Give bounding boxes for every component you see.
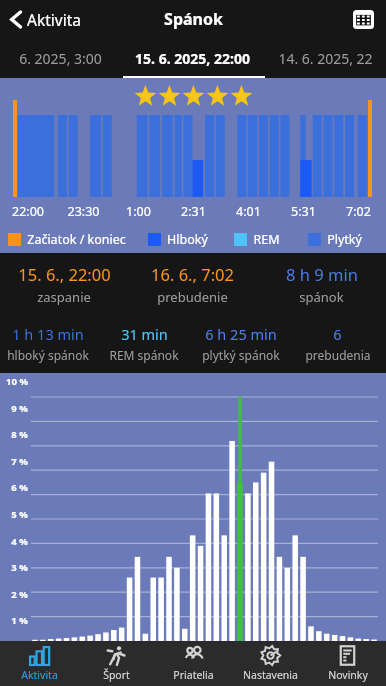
- staticText: 8 h 9 min: [286, 263, 358, 285]
- button[interactable]: Aktivita: [0, 4, 93, 35]
- staticText: 8 %: [11, 428, 28, 441]
- staticText: 23:30: [56, 203, 111, 220]
- staticText: prebudenie: [157, 288, 228, 306]
- staticText: 6: [333, 324, 342, 344]
- staticText: 2 %: [11, 588, 28, 601]
- button[interactable]: Nastavenia: [232, 641, 309, 686]
- staticText: 16. 6., 7:02: [151, 263, 234, 285]
- staticText: 10 %: [6, 375, 28, 388]
- staticText: 6 %: [11, 481, 28, 494]
- button[interactable]: 14. 6. 2025, 22: [265, 38, 386, 78]
- staticText: Začiatok / koniec: [27, 231, 126, 248]
- staticText: 1:00: [111, 203, 166, 220]
- button[interactable]: 31 min: [96, 322, 192, 365]
- button[interactable]: Hlboký: [140, 231, 226, 248]
- staticText: 6. 2025, 3:00: [19, 49, 102, 68]
- staticText: 7 %: [11, 455, 28, 468]
- button[interactable]: Kalendár: [350, 6, 377, 33]
- staticText: 4 %: [11, 535, 28, 548]
- staticText: 22:00: [0, 203, 56, 220]
- button[interactable]: 6: [289, 322, 386, 365]
- staticText: 3 %: [11, 561, 28, 574]
- staticText: 15. 6., 22:00: [18, 263, 111, 285]
- staticText: 7:02: [331, 203, 386, 220]
- staticText: 14. 6. 2025, 22: [278, 49, 373, 68]
- button[interactable]: Aktivita: [0, 641, 78, 686]
- staticText: Nastavenia: [243, 668, 298, 682]
- staticText: 9 %: [11, 402, 28, 415]
- staticText: Aktivita: [27, 9, 81, 30]
- button[interactable]: Šport: [78, 641, 155, 686]
- button[interactable]: Začiatok / koniec: [0, 231, 140, 248]
- button[interactable]: 16. 6., 7:02: [128, 261, 257, 308]
- staticText: zaspanie: [37, 288, 91, 306]
- staticText: 6 h 25 min: [205, 324, 277, 344]
- staticText: prebudenia: [305, 347, 371, 363]
- button[interactable]: REM: [226, 231, 300, 248]
- staticText: Novinky: [328, 668, 368, 682]
- staticText: 1 %: [11, 614, 28, 627]
- staticText: 1 h 13 min: [12, 324, 84, 344]
- button[interactable]: 8 h 9 min: [257, 261, 386, 308]
- staticText: Hlboký: [167, 231, 208, 248]
- button[interactable]: Plytký: [300, 231, 386, 248]
- staticText: 4:01: [221, 203, 276, 220]
- staticText: spánok: [299, 288, 344, 306]
- staticText: REM: [253, 231, 280, 248]
- staticText: Plytký: [327, 231, 362, 248]
- button[interactable]: 15. 6., 22:00: [0, 261, 128, 308]
- staticText: plytký spánok: [202, 347, 280, 363]
- staticText: Aktivita: [21, 668, 58, 682]
- staticText: 15. 6. 2025, 22:00: [135, 49, 250, 68]
- button[interactable]: Novinky: [309, 641, 386, 686]
- button[interactable]: 15. 6. 2025, 22:00: [120, 38, 265, 78]
- staticText: 2:31: [166, 203, 221, 220]
- button[interactable]: Priatelia: [155, 641, 232, 686]
- staticText: Šport: [103, 668, 130, 682]
- staticText: Spánok: [164, 8, 223, 30]
- staticText: Priatelia: [173, 668, 214, 682]
- button[interactable]: 6. 2025, 3:00: [0, 38, 120, 78]
- staticText: 5:31: [276, 203, 331, 220]
- staticText: 5 %: [11, 508, 28, 521]
- staticText: 31 min: [121, 324, 168, 344]
- staticText: hlboký spánok: [7, 347, 89, 363]
- button[interactable]: 1 h 13 min: [0, 322, 96, 365]
- staticText: REM spánok: [109, 347, 179, 363]
- button[interactable]: 6 h 25 min: [192, 322, 289, 365]
